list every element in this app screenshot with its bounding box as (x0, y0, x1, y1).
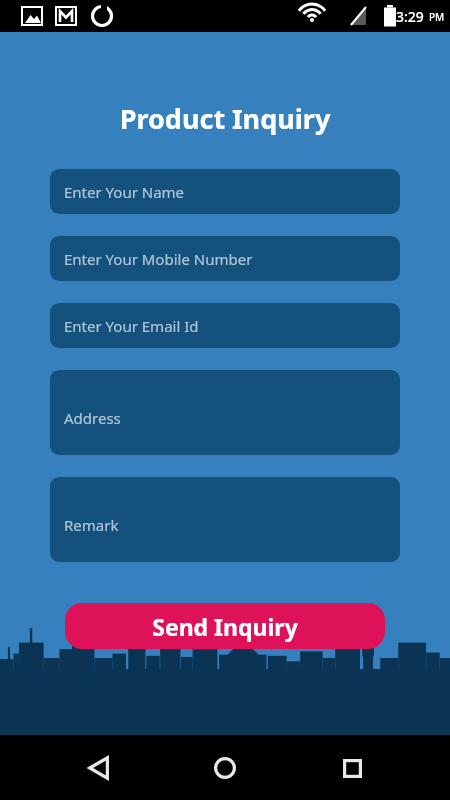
button[interactable]: Send Inquiry (65, 603, 385, 649)
staticText: Remark (64, 515, 119, 535)
button[interactable]: Home (197, 740, 253, 796)
staticText: Enter Your Email Id (64, 316, 199, 336)
staticText: Enter Your Name (64, 182, 185, 202)
staticText: Send Inquiry (152, 611, 298, 642)
button[interactable]: Address (50, 370, 400, 455)
button[interactable]: Recent apps (324, 740, 380, 796)
button[interactable]: Remark (50, 477, 400, 562)
staticText: PM (429, 10, 445, 24)
staticText: Address (64, 408, 121, 428)
button[interactable]: Enter Your Email Id (50, 303, 400, 348)
button[interactable]: Enter Your Mobile Number (50, 236, 400, 281)
staticText: Enter Your Mobile Number (64, 249, 253, 269)
button[interactable]: Back (71, 740, 127, 796)
button[interactable]: Enter Your Name (50, 169, 400, 214)
staticText: 3:29 (396, 7, 424, 26)
staticText: Product Inquiry (0, 100, 450, 137)
